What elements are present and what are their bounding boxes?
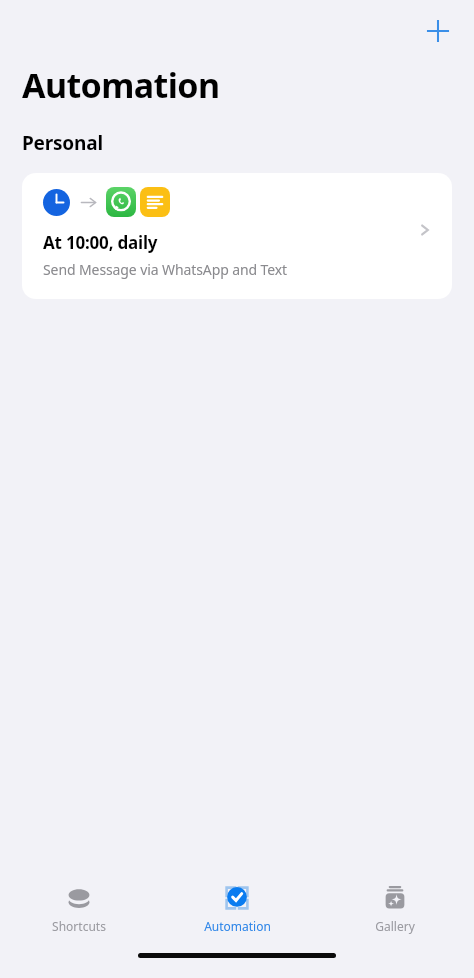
- staticText: Automation: [204, 918, 271, 934]
- staticText: Shortcuts: [52, 918, 106, 934]
- button[interactable]: Create Automation: [416, 9, 460, 53]
- staticText: Automation: [22, 62, 220, 108]
- button[interactable]: Gallery: [316, 872, 474, 944]
- staticText: At 10:00, daily: [43, 231, 158, 254]
- button[interactable]: Automation: [158, 872, 316, 944]
- button[interactable]: Shortcuts: [0, 872, 158, 944]
- staticText: Personal: [22, 130, 103, 156]
- staticText: Gallery: [375, 918, 415, 934]
- button[interactable]: At 10:00, daily: [22, 173, 452, 299]
- staticText: Send Message via WhatsApp and Text: [43, 260, 288, 279]
